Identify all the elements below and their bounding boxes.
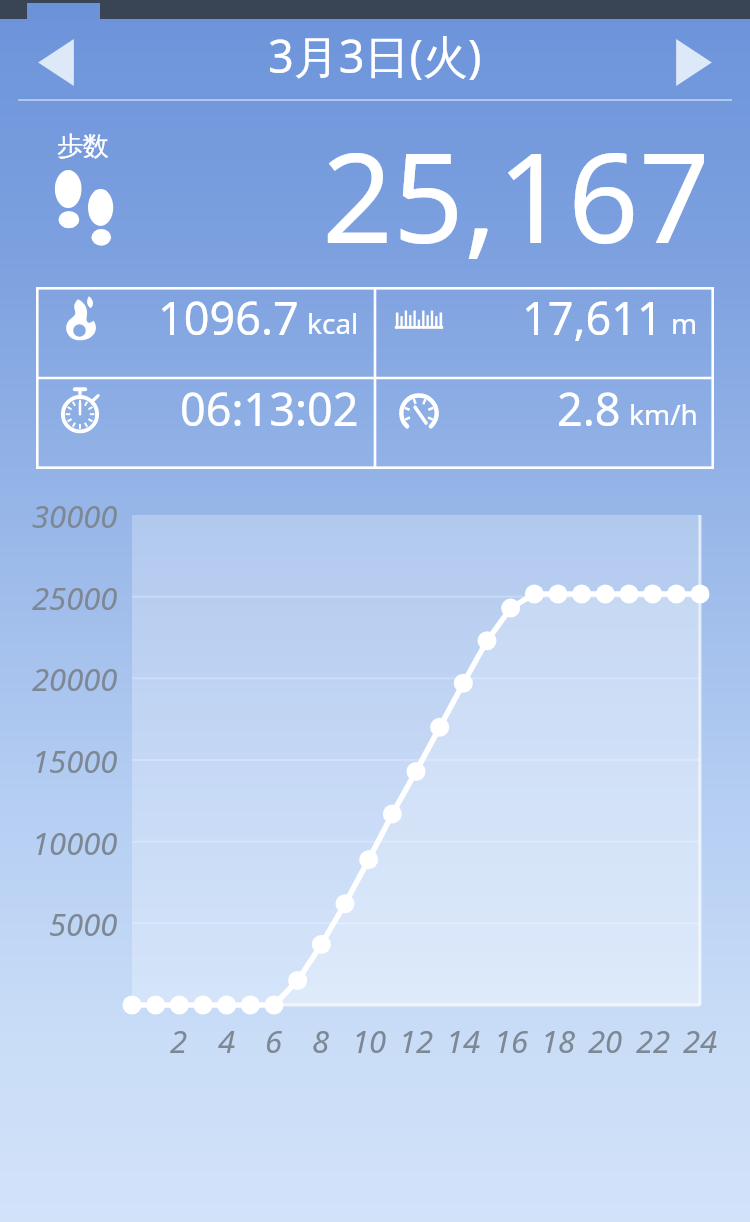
staticText: 16 — [494, 1020, 529, 1062]
staticText: 25000 — [32, 577, 118, 619]
button[interactable]: Next day — [646, 23, 742, 101]
staticText: 歩数 — [57, 130, 109, 163]
staticText: 30000 — [32, 495, 118, 537]
staticText: 1096.7 — [158, 287, 299, 348]
staticText: 4 — [218, 1020, 236, 1062]
staticText: m — [671, 304, 698, 342]
staticText: 17,611 — [522, 287, 663, 348]
staticText: 22 — [636, 1020, 671, 1062]
staticText: kcal — [307, 304, 359, 342]
button[interactable]: Duration — [36, 378, 375, 439]
staticText: 10 — [352, 1020, 387, 1062]
staticText: 06:13:02 — [180, 378, 359, 439]
staticText: 10000 — [32, 822, 118, 864]
staticText: km/h — [629, 395, 698, 433]
staticText: 18 — [541, 1020, 576, 1062]
button[interactable]: Previous day — [8, 23, 104, 101]
staticText: 15000 — [32, 740, 118, 782]
staticText: 2 — [170, 1020, 188, 1062]
staticText: 14 — [446, 1020, 481, 1062]
button[interactable]: Calories — [36, 287, 375, 348]
button[interactable]: Distance — [375, 287, 714, 348]
staticText: 24 — [683, 1020, 718, 1062]
staticText: 20 — [588, 1020, 623, 1062]
staticText: 12 — [399, 1020, 434, 1062]
staticText: 5000 — [49, 903, 118, 945]
staticText: 8 — [312, 1020, 330, 1062]
staticText: 3月3日(火) — [268, 25, 482, 86]
staticText: 20000 — [32, 658, 118, 700]
button[interactable]: Speed — [375, 378, 714, 439]
staticText: 25,167 — [322, 110, 710, 279]
staticText: 6 — [265, 1020, 283, 1062]
staticText: 2.8 — [557, 378, 621, 439]
